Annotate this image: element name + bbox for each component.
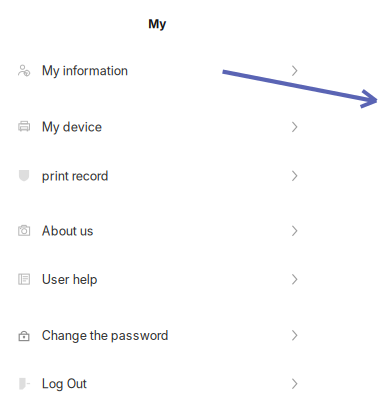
staticText: User help bbox=[42, 272, 98, 287]
button[interactable]: User help bbox=[0, 254, 308, 304]
button[interactable]: My information bbox=[0, 46, 308, 96]
staticText: My device bbox=[42, 119, 102, 134]
button[interactable]: Log Out bbox=[0, 359, 308, 405]
staticText: About us bbox=[42, 223, 94, 238]
button[interactable]: Change the password bbox=[0, 310, 308, 360]
staticText: My information bbox=[42, 63, 128, 78]
button[interactable]: About us bbox=[0, 206, 308, 256]
staticText: Log Out bbox=[42, 376, 87, 391]
staticText: Change the password bbox=[42, 328, 169, 343]
staticText: print record bbox=[42, 168, 109, 183]
button[interactable]: My device bbox=[0, 102, 308, 152]
staticText: My bbox=[148, 17, 166, 31]
button[interactable]: print record bbox=[0, 151, 308, 201]
